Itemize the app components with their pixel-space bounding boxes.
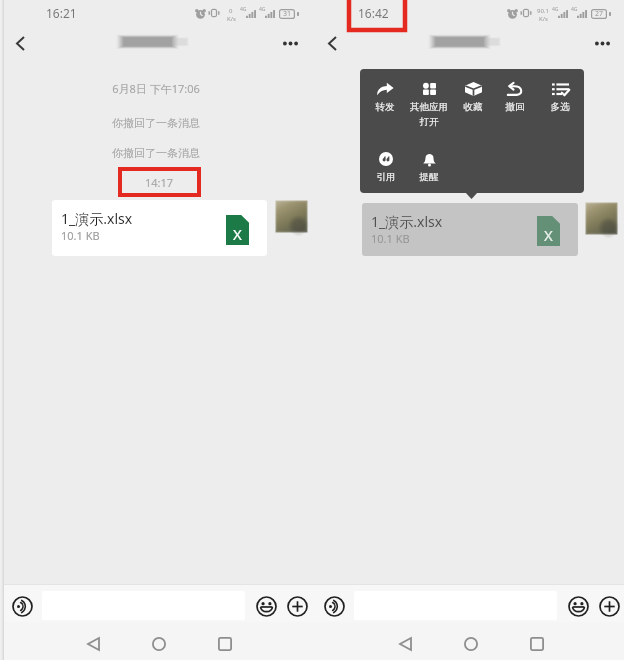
staticText: 4G <box>259 6 266 13</box>
button[interactable]: Emoji <box>255 595 277 617</box>
staticText: K/s <box>227 15 236 23</box>
button[interactable]: Home <box>142 627 176 660</box>
button[interactable]: Emoji <box>567 595 589 617</box>
staticText: 27 <box>595 9 604 19</box>
staticText: 引用 <box>363 171 409 183</box>
button[interactable]: More <box>286 595 308 617</box>
button[interactable]: 转发 <box>362 78 408 127</box>
staticText: X <box>233 224 242 244</box>
button[interactable]: Recents <box>208 627 242 660</box>
staticText: 90.1 <box>537 7 549 15</box>
staticText: 其他应用 打开 <box>403 101 455 128</box>
staticText: 收藏 <box>450 101 496 113</box>
staticText: 10.1 KB <box>61 228 100 243</box>
staticText: X <box>544 225 553 245</box>
button[interactable]: 引用 <box>363 148 409 193</box>
staticText: 撤回 <box>492 101 538 113</box>
staticText: 你撤回了一条消息 <box>0 116 312 130</box>
button[interactable]: 提醒 <box>406 148 452 193</box>
button[interactable]: 1_演示.xlsx <box>362 203 578 256</box>
staticText: 1_演示.xlsx <box>61 209 133 228</box>
button[interactable]: 多选 <box>537 78 583 127</box>
staticText: 4G <box>571 6 578 13</box>
staticText: 10.1 KB <box>371 231 410 246</box>
button[interactable]: More options <box>585 26 619 60</box>
button[interactable]: 其他应用 打开 <box>403 78 455 127</box>
staticText: 4G <box>240 6 247 13</box>
button[interactable]: 撤回 <box>492 78 538 127</box>
button[interactable]: Recents <box>520 627 554 660</box>
button[interactable]: Back <box>388 627 422 660</box>
staticText: 16:42 <box>358 5 389 21</box>
button[interactable]: Voice message <box>323 595 345 617</box>
button[interactable]: More options <box>273 26 307 60</box>
staticText: 1_演示.xlsx <box>371 212 443 231</box>
staticText: 31 <box>283 9 292 19</box>
button[interactable]: 1_演示.xlsx <box>52 200 267 256</box>
button[interactable]: Back <box>4 26 36 60</box>
staticText: 提醒 <box>406 171 452 183</box>
button[interactable]: 收藏 <box>450 78 496 127</box>
staticText: 0 <box>229 7 233 15</box>
button[interactable]: More <box>598 595 620 617</box>
button[interactable]: Voice message <box>11 595 33 617</box>
button[interactable]: Home <box>454 627 488 660</box>
staticText: 14:17 <box>145 175 174 190</box>
button[interactable]: Back <box>76 627 110 660</box>
button[interactable]: Back <box>316 26 348 60</box>
staticText: 转发 <box>362 101 408 113</box>
staticText: K/s <box>539 15 548 23</box>
staticText: 4G <box>552 6 559 13</box>
staticText: 16:21 <box>46 5 77 21</box>
staticText: 多选 <box>537 101 583 113</box>
staticText: 你撤回了一条消息 <box>0 146 312 160</box>
staticText: 6月8日 下午17:06 <box>0 81 312 96</box>
